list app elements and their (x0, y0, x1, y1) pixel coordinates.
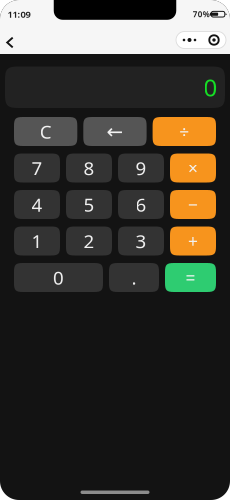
staticText: 2 (83, 229, 94, 253)
staticText: C (40, 119, 52, 144)
staticText: 0 (53, 265, 64, 290)
staticText: 5 (83, 192, 94, 217)
staticText: 8 (83, 156, 94, 180)
button[interactable]: 0 (14, 263, 103, 292)
staticText: × (188, 156, 198, 179)
button[interactable]: 9 (118, 153, 164, 182)
button[interactable]: Tabs (202, 31, 225, 48)
staticText: 9 (135, 156, 146, 180)
staticText: 70% (193, 9, 210, 19)
button[interactable]: 6 (118, 190, 164, 219)
button[interactable]: 2 (66, 226, 112, 255)
staticText: 0 (203, 71, 217, 103)
button[interactable]: C (14, 117, 77, 146)
button[interactable]: 8 (66, 153, 112, 182)
button[interactable]: 3 (118, 226, 164, 255)
button[interactable]: Back (2, 26, 18, 54)
button[interactable]: 1 (14, 226, 60, 255)
button[interactable]: − (170, 190, 216, 219)
staticText: 3 (135, 229, 146, 253)
button[interactable]: 7 (14, 153, 60, 182)
staticText: − (188, 193, 198, 216)
staticText: . (131, 265, 136, 290)
staticText: 7 (31, 156, 42, 180)
button[interactable]: 4 (14, 190, 60, 219)
staticText: 6 (135, 192, 146, 217)
button[interactable]: 5 (66, 190, 112, 219)
button[interactable]: ← (83, 117, 147, 146)
staticText: ← (106, 120, 123, 143)
button[interactable]: = (165, 263, 216, 292)
button[interactable]: . (109, 263, 159, 292)
button[interactable]: More (176, 31, 202, 48)
staticText: + (188, 229, 198, 252)
staticText: 4 (31, 192, 42, 217)
staticText: ÷ (179, 120, 189, 143)
button[interactable]: ÷ (153, 117, 216, 146)
staticText: = (185, 266, 195, 289)
button[interactable]: × (170, 153, 216, 182)
staticText: 11:09 (7, 8, 30, 20)
staticText: 1 (31, 229, 42, 253)
button[interactable]: + (170, 226, 216, 255)
